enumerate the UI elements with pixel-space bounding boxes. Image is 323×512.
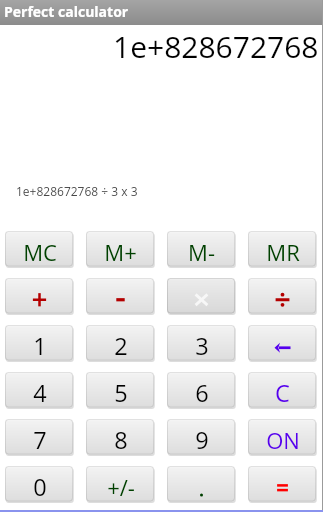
staticText: 3 — [195, 330, 209, 362]
staticText: 4 — [33, 377, 47, 409]
button[interactable]: M+ — [86, 231, 155, 268]
staticText: MR — [266, 237, 300, 267]
button[interactable]: Add — [5, 278, 74, 315]
button[interactable]: 9 — [167, 419, 236, 456]
staticText: 1e+828672768 ÷ 3 x 3 — [16, 183, 138, 199]
button[interactable]: Decimal point — [167, 466, 236, 503]
staticText: Perfect calculator — [4, 2, 129, 21]
staticText: 9 — [195, 424, 209, 456]
staticText: 0 — [33, 471, 47, 503]
button[interactable]: Backspace — [248, 325, 317, 362]
staticText: 5 — [114, 377, 128, 409]
staticText: 7 — [33, 424, 47, 456]
staticText: MC — [23, 237, 57, 267]
button[interactable]: MR — [248, 231, 317, 268]
staticText: ON — [266, 425, 300, 455]
button[interactable]: Multiply — [167, 278, 236, 315]
button[interactable]: Divide — [248, 278, 317, 315]
button[interactable]: Subtract — [86, 278, 155, 315]
button[interactable]: ON — [248, 419, 317, 456]
button[interactable]: 0 — [5, 466, 74, 503]
button[interactable]: 4 — [5, 372, 74, 409]
button[interactable]: 3 — [167, 325, 236, 362]
button[interactable]: 1 — [5, 325, 74, 362]
staticText: +/- — [107, 472, 135, 502]
staticText: M+ — [104, 237, 137, 267]
button[interactable]: 7 — [5, 419, 74, 456]
staticText: 1 — [33, 330, 47, 362]
button[interactable]: 5 — [86, 372, 155, 409]
staticText: 1e+828672768 — [113, 26, 319, 67]
staticText: 8 — [114, 424, 128, 456]
button[interactable]: +/- — [86, 466, 155, 503]
staticText: M- — [188, 237, 215, 267]
staticText: 2 — [114, 330, 128, 362]
staticText: 6 — [195, 377, 209, 409]
button[interactable]: Equals — [248, 466, 317, 503]
button[interactable]: MC — [5, 231, 74, 268]
button[interactable]: 2 — [86, 325, 155, 362]
button[interactable]: 8 — [86, 419, 155, 456]
button[interactable]: 6 — [167, 372, 236, 409]
staticText: C — [275, 377, 290, 409]
button[interactable]: M- — [167, 231, 236, 268]
button[interactable]: C — [248, 372, 317, 409]
